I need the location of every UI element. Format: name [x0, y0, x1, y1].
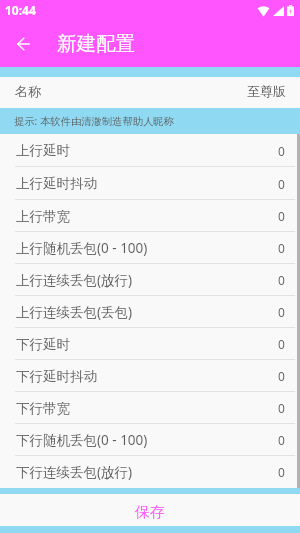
staticText: 0 [278, 208, 285, 224]
staticText: 0 [278, 336, 285, 352]
button[interactable]: 上行延时 [0, 134, 300, 167]
staticText: 名称 [15, 83, 41, 99]
staticText: 下行随机丢包(0 - 100) [16, 431, 148, 449]
button[interactable]: 上行连续丢包(放行) [0, 264, 300, 296]
staticText: 提示: 本软件由清澈制造帮助人昵称 [14, 114, 174, 128]
staticText: 上行延时 [16, 142, 70, 159]
staticText: 下行带宽 [16, 400, 70, 417]
button[interactable]: 名称 [0, 77, 300, 108]
staticText: 至尊版 [247, 83, 286, 99]
button[interactable]: 上行连续丢包(丢包) [0, 296, 300, 328]
staticText: 0 [278, 400, 285, 416]
button[interactable]: 下行随机丢包(0 - 100) [0, 424, 300, 456]
staticText: 下行延时 [16, 336, 70, 353]
staticText: 上行连续丢包(放行) [16, 271, 133, 289]
staticText: 下行连续丢包(放行) [16, 463, 133, 481]
button[interactable]: 上行延时抖动 [0, 167, 300, 200]
staticText: 0 [278, 272, 285, 288]
staticText: 上行带宽 [16, 208, 70, 225]
staticText: 0 [278, 176, 285, 192]
button[interactable]: 下行延时抖动 [0, 360, 300, 392]
staticText: 0 [278, 143, 285, 159]
staticText: 上行延时抖动 [16, 175, 97, 192]
staticText: 0 [278, 240, 285, 256]
button[interactable]: 下行连续丢包(放行) [0, 456, 300, 488]
staticText: 10:44 [5, 2, 36, 18]
button[interactable]: 上行带宽 [0, 200, 300, 232]
button[interactable]: 保存 [0, 494, 300, 526]
button[interactable]: 下行带宽 [0, 392, 300, 424]
staticText: 0 [278, 368, 285, 384]
staticText: 保存 [135, 503, 165, 522]
staticText: 下行延时抖动 [16, 368, 97, 385]
staticText: 0 [278, 464, 285, 480]
button[interactable]: Back [3, 24, 43, 64]
staticText: 上行连续丢包(丢包) [16, 303, 133, 321]
staticText: 0 [278, 432, 285, 448]
button[interactable]: 上行随机丢包(0 - 100) [0, 232, 300, 264]
button[interactable]: 下行延时 [0, 328, 300, 360]
staticText: 0 [278, 304, 285, 320]
staticText: 新建配置 [57, 31, 135, 56]
staticText: 上行随机丢包(0 - 100) [16, 239, 148, 257]
